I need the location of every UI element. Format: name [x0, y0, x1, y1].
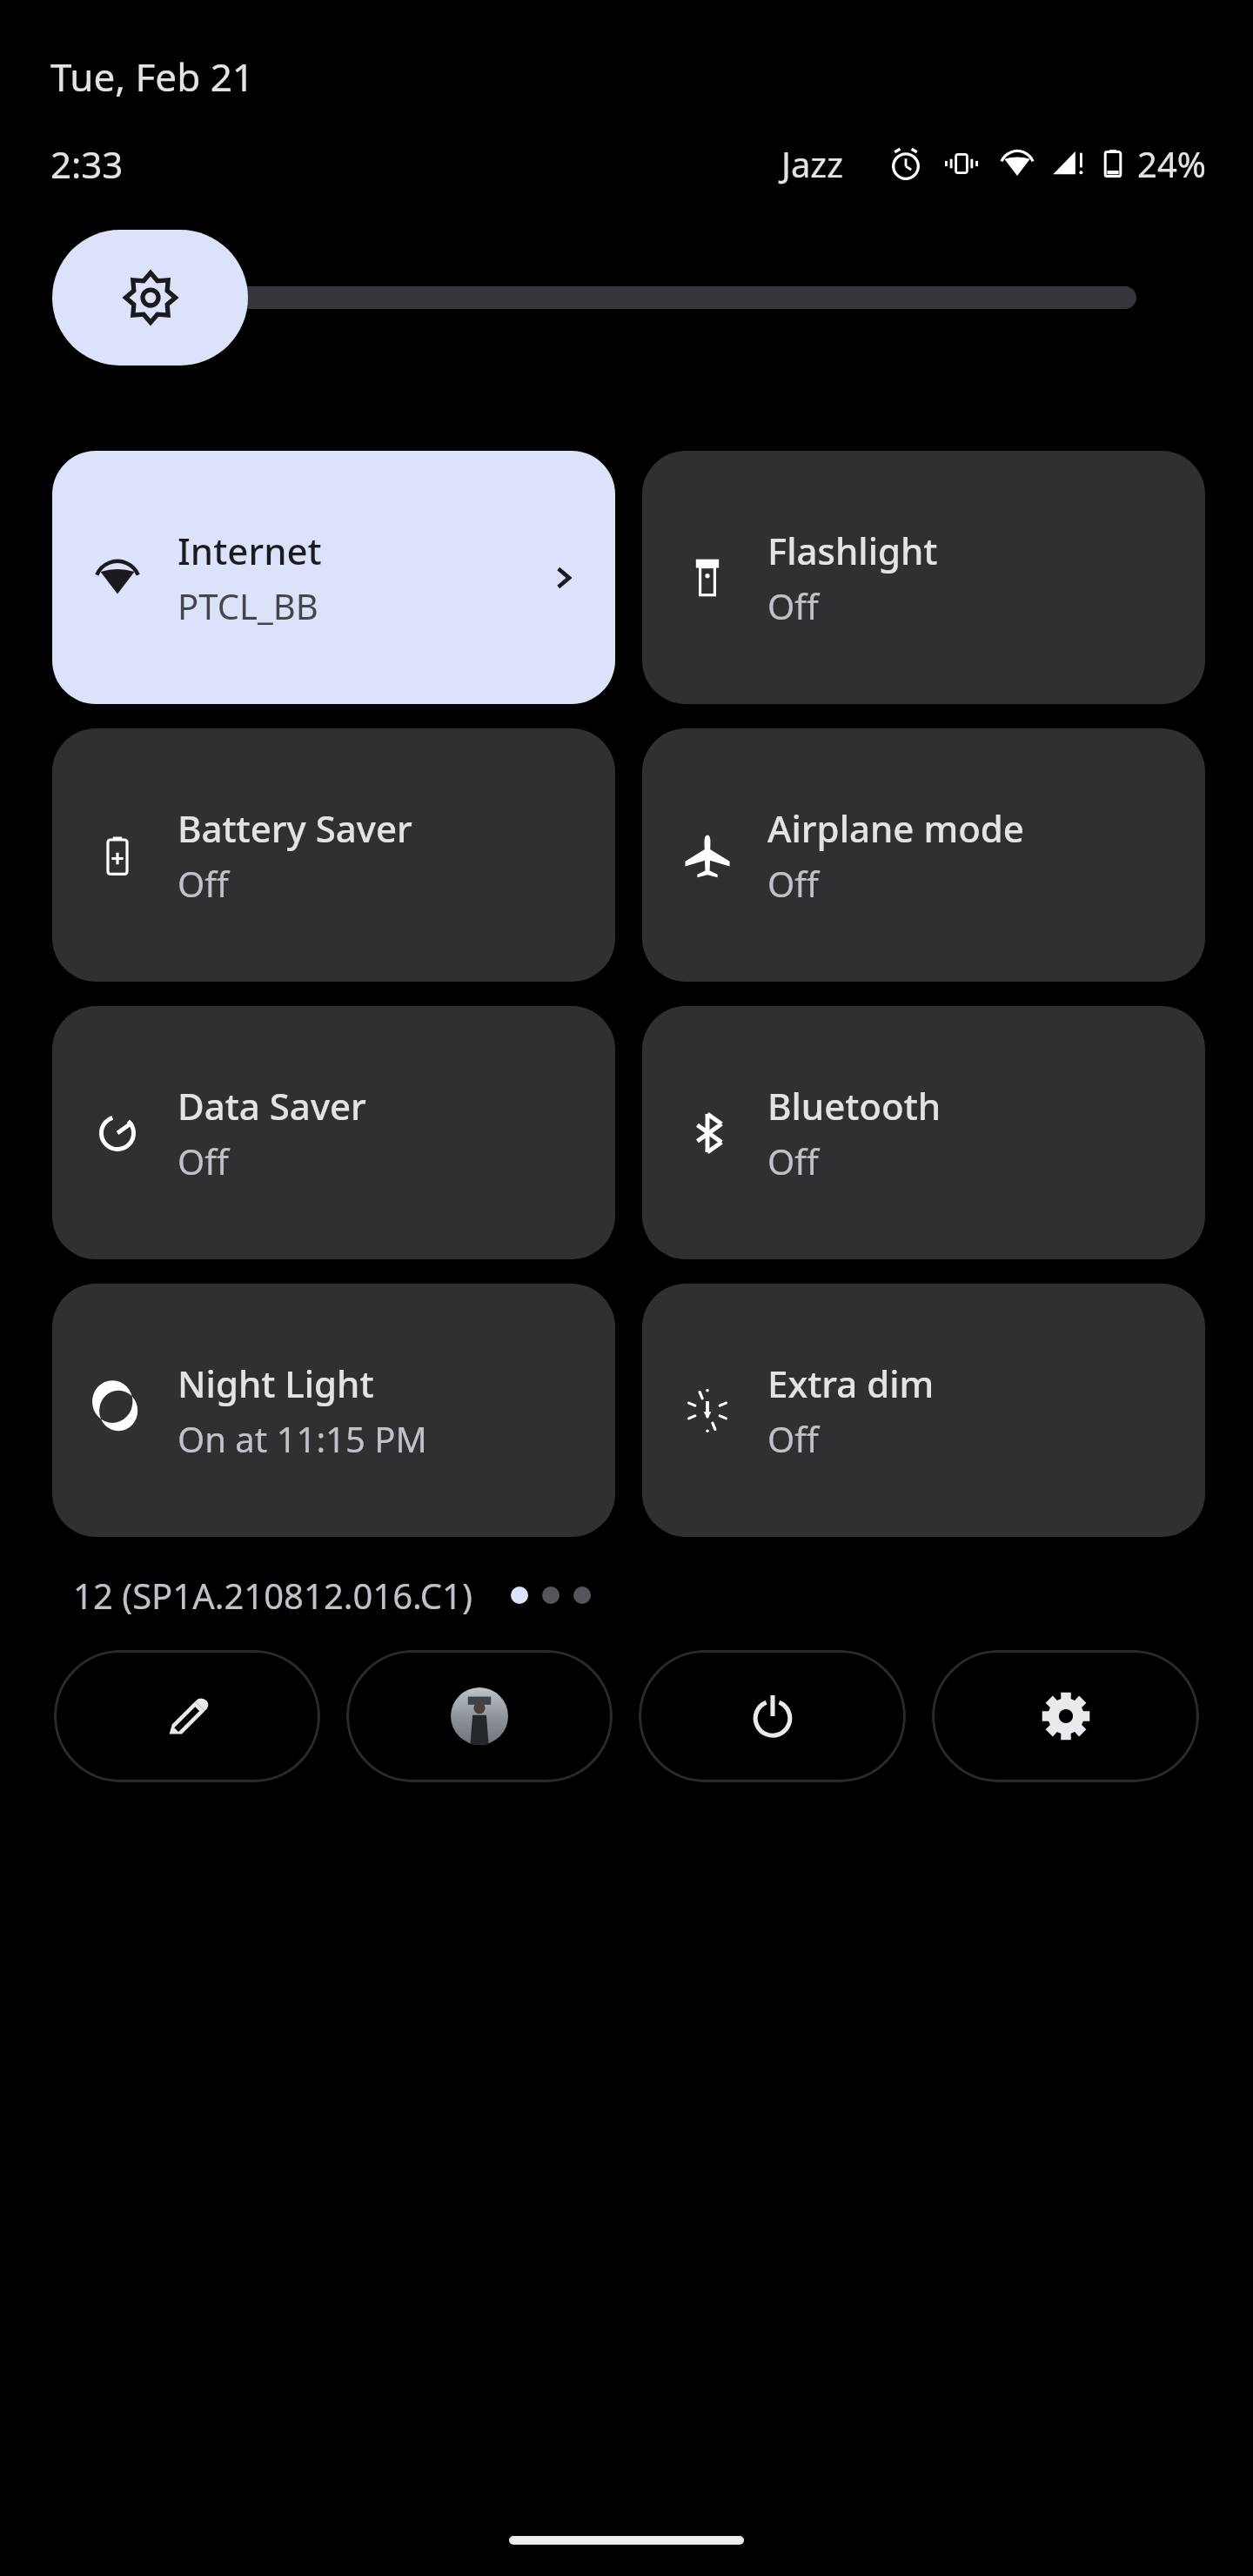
staticText: Battery Saver	[178, 803, 412, 853]
button[interactable]: Extra dim	[642, 1284, 1205, 1537]
staticText: Jazz	[781, 140, 843, 187]
staticText: Off	[767, 1137, 819, 1184]
button[interactable]: Night Light	[52, 1284, 615, 1537]
staticText: Extra dim	[767, 1358, 935, 1408]
staticText: 24%	[1137, 140, 1206, 187]
staticText: 12 (SP1A.210812.016.C1)	[73, 1572, 472, 1619]
staticText: Tue, Feb 21	[50, 50, 254, 103]
staticText: On at 11:15 PM	[178, 1415, 427, 1462]
button[interactable]: User	[346, 1650, 613, 1782]
staticText: Off	[767, 1415, 819, 1462]
button[interactable]: Brightness	[0, 230, 1253, 366]
staticText: Airplane mode	[767, 803, 1024, 853]
staticText: Off	[178, 1137, 229, 1184]
button[interactable]: Airplane mode	[642, 728, 1205, 982]
button[interactable]: Power	[639, 1650, 906, 1782]
button[interactable]: Internet	[52, 451, 615, 704]
button[interactable]: Settings	[932, 1650, 1199, 1782]
staticText: 2:33	[50, 139, 124, 189]
staticText: Off	[178, 860, 229, 907]
button[interactable]: Data Saver	[52, 1006, 615, 1259]
button[interactable]: Bluetooth	[642, 1006, 1205, 1259]
staticText: Flashlight	[767, 526, 938, 575]
staticText: Data Saver	[178, 1081, 366, 1130]
button[interactable]: Flashlight	[642, 451, 1205, 704]
staticText: Internet	[178, 526, 322, 575]
staticText: Bluetooth	[767, 1081, 941, 1130]
button[interactable]: Battery Saver	[52, 728, 615, 982]
staticText: Night Light	[178, 1358, 374, 1408]
staticText: Off	[767, 582, 819, 629]
staticText: PTCL_BB	[178, 582, 318, 629]
button[interactable]: Edit tiles	[54, 1650, 320, 1782]
staticText: Off	[767, 860, 819, 907]
